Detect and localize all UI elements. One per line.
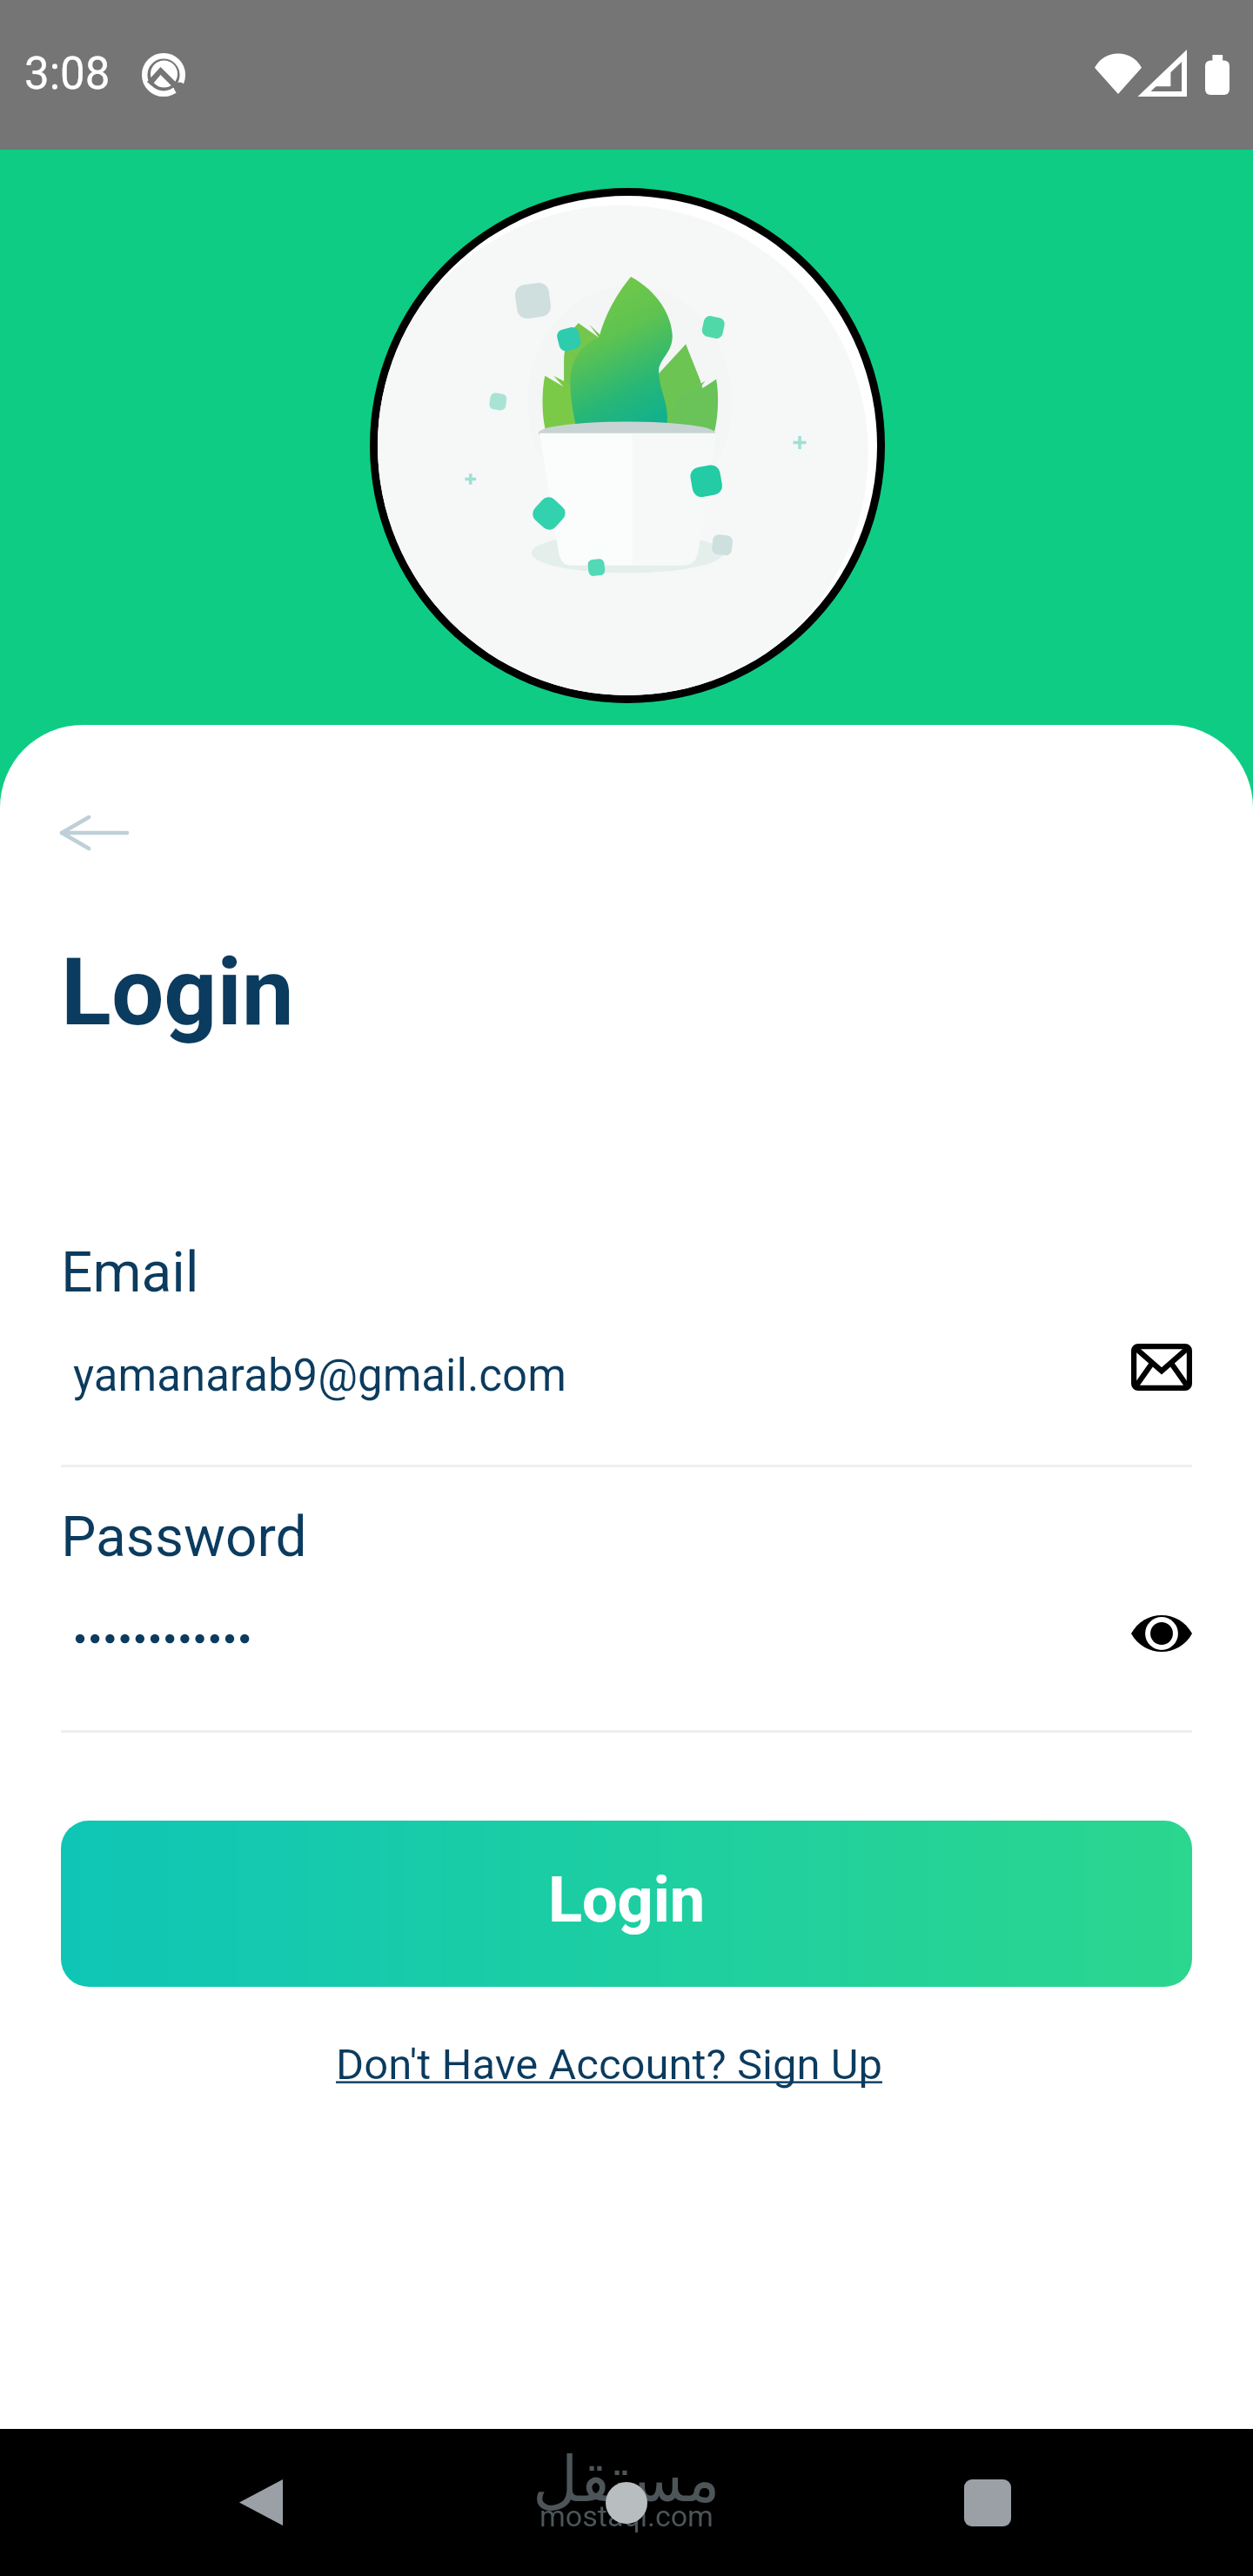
staticText: Password [61, 1505, 307, 1570]
staticText: مستقل [533, 2443, 720, 2516]
button[interactable]: Show password [1109, 1586, 1215, 1681]
staticText: mostaql.com [539, 2499, 714, 2533]
button[interactable]: Login [61, 1821, 1192, 1987]
button[interactable]: Don't Have Account? Sign Up [336, 2040, 882, 2090]
button[interactable]: Email [1109, 1315, 1215, 1419]
button[interactable]: Recents [935, 2429, 1040, 2576]
staticText: Login [548, 1863, 706, 1936]
button[interactable]: Home [574, 2429, 679, 2576]
staticText: Login [61, 938, 294, 1047]
button[interactable]: Back [38, 777, 150, 889]
button[interactable]: Back [209, 2429, 313, 2576]
staticText: yamanarab9@gmail.com [73, 1350, 566, 1402]
staticText: 3:08 [24, 48, 111, 100]
staticText: Email [61, 1240, 199, 1305]
